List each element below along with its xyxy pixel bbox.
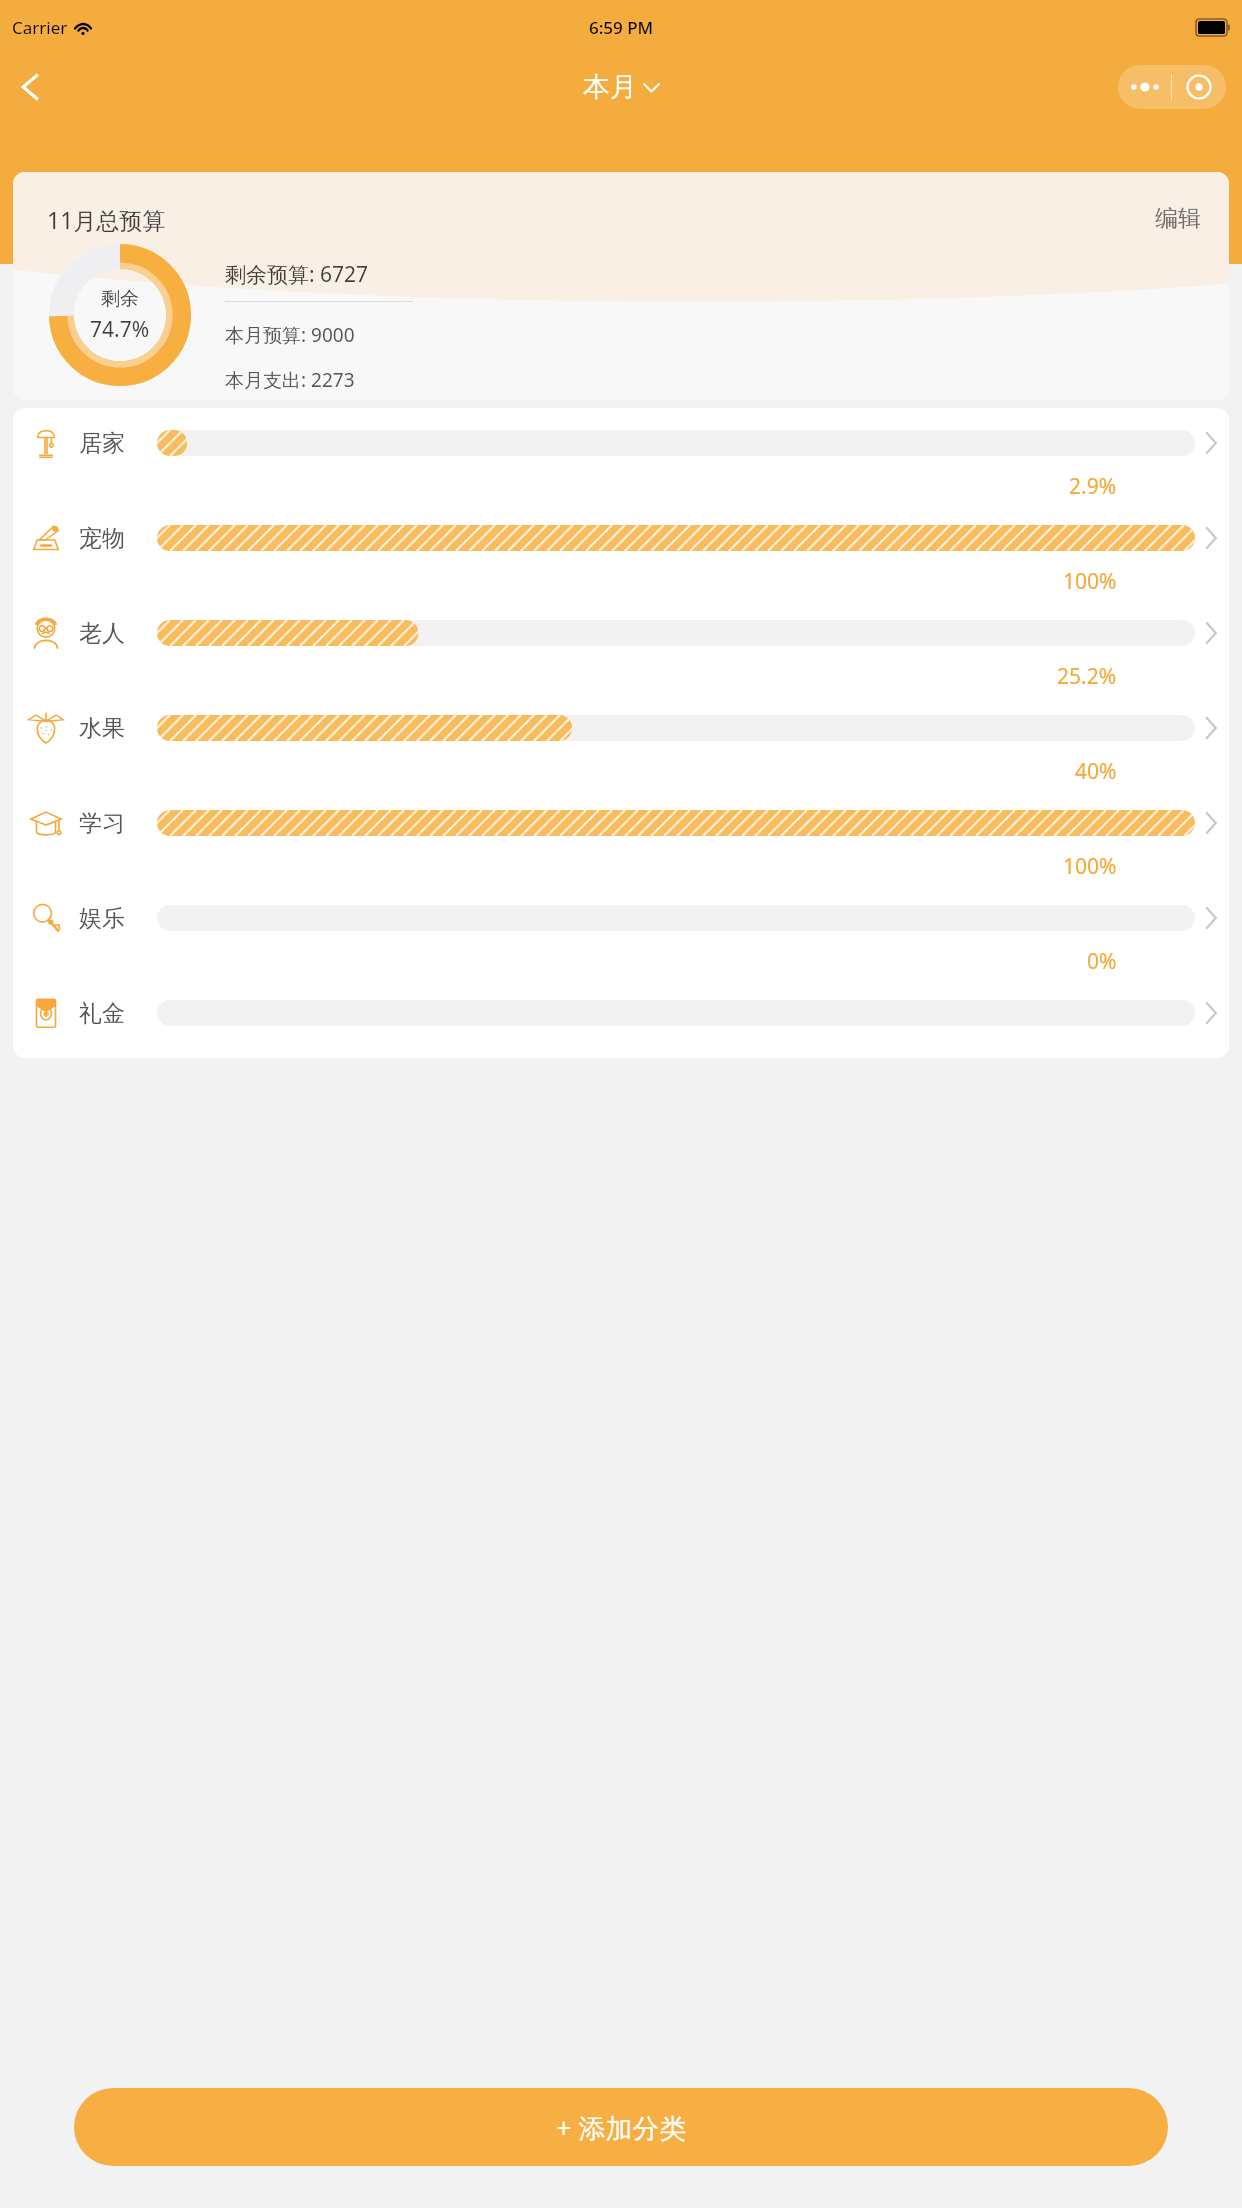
staticText: Carrier xyxy=(12,16,68,39)
staticText: 剩余 xyxy=(101,287,139,311)
staticText: 礼金 xyxy=(79,999,153,1028)
button[interactable]: 本月 xyxy=(583,70,659,104)
button[interactable]: 水果 xyxy=(13,701,1229,786)
staticText: 11月总预算 xyxy=(47,204,166,235)
button[interactable]: 居家 xyxy=(13,416,1229,501)
staticText: 娱乐 xyxy=(79,904,153,933)
button[interactable]: 礼金 xyxy=(13,986,1229,1040)
button[interactable]: Back xyxy=(0,56,62,118)
staticText: 25.2% xyxy=(1057,662,1117,691)
staticText: 宠物 xyxy=(79,524,153,553)
button[interactable]: 宠物 xyxy=(13,511,1229,596)
staticText: + 添加分类 xyxy=(556,2109,687,2146)
staticText: 100% xyxy=(1063,567,1117,596)
button[interactable]: 老人 xyxy=(13,606,1229,691)
button[interactable]: 11月总预算 xyxy=(13,172,1229,400)
staticText: 本月预算: 9000 xyxy=(225,322,355,348)
button[interactable]: 编辑 xyxy=(1155,204,1201,233)
staticText: 100% xyxy=(1063,852,1117,881)
staticText: 本月支出: 2273 xyxy=(225,367,355,393)
staticText: 本月 xyxy=(583,70,637,104)
staticText: 编辑 xyxy=(1155,204,1201,233)
staticText: 老人 xyxy=(79,619,153,648)
button[interactable]: More options xyxy=(1118,65,1171,109)
staticText: 0% xyxy=(1087,947,1117,976)
staticText: 2.9% xyxy=(1069,472,1117,501)
staticText: 学习 xyxy=(79,809,153,838)
staticText: 6:59 PM xyxy=(589,16,654,39)
staticText: 居家 xyxy=(79,429,153,458)
button[interactable]: + 添加分类 xyxy=(74,2088,1168,2166)
staticText: 剩余预算: 6727 xyxy=(225,260,369,289)
staticText: 74.7% xyxy=(90,315,150,344)
staticText: 40% xyxy=(1075,757,1117,786)
staticText: 水果 xyxy=(79,714,153,743)
button[interactable]: Record xyxy=(1172,65,1226,109)
button[interactable]: 娱乐 xyxy=(13,891,1229,976)
button[interactable]: 学习 xyxy=(13,796,1229,881)
